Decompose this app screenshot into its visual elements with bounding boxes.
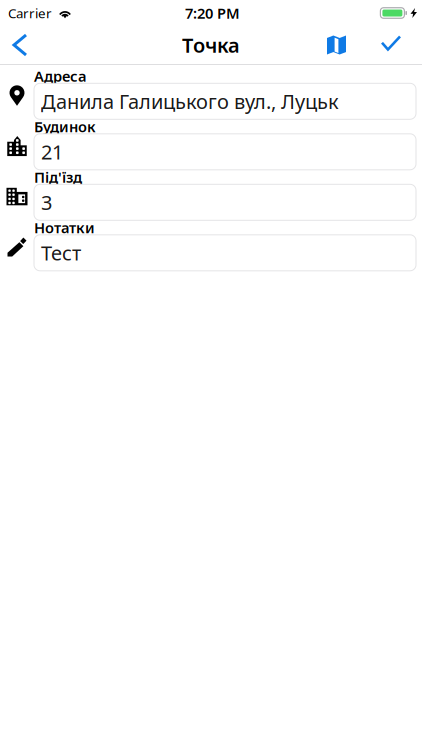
staticText: Тест bbox=[41, 239, 81, 266]
staticText: Carrier bbox=[8, 4, 52, 22]
button[interactable]: Show on map bbox=[311, 26, 363, 64]
staticText: Під'їзд bbox=[34, 167, 82, 187]
staticText: Адреса bbox=[34, 66, 87, 86]
staticText: Точка bbox=[182, 32, 240, 58]
staticText: 21 bbox=[41, 138, 63, 165]
staticText: Будинок bbox=[34, 117, 96, 136]
staticText: Нотатки bbox=[34, 218, 95, 237]
staticText: Данила Галицького вул., Луцьк bbox=[41, 88, 339, 115]
button[interactable]: Save bbox=[363, 26, 422, 64]
staticText: 7:20 PM bbox=[185, 3, 240, 23]
staticText: 3 bbox=[41, 189, 52, 216]
button[interactable]: Back bbox=[0, 26, 38, 64]
